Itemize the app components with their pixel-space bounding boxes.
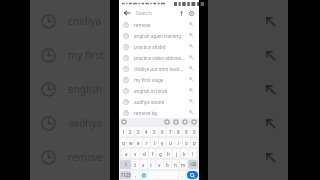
- staticText: my first stage: [134, 77, 185, 83]
- button[interactable]: Back: [122, 8, 132, 18]
- button[interactable]: h: [165, 149, 172, 158]
- button[interactable]: 1: [120, 127, 126, 136]
- button[interactable]: .: [179, 171, 186, 179]
- button[interactable]: e: [135, 138, 142, 147]
- staticText: 3: [137, 129, 140, 135]
- button[interactable]: 🌐: [140, 171, 147, 179]
- button[interactable]: t: [151, 138, 158, 147]
- staticText: 4: [145, 129, 148, 135]
- button[interactable]: s: [131, 149, 139, 158]
- button[interactable]: Insert query: [188, 76, 195, 83]
- staticText: ⌫: [190, 162, 197, 167]
- staticText: m: [181, 162, 186, 168]
- button[interactable]: Emoji: [182, 119, 188, 125]
- staticText: s: [134, 151, 137, 157]
- staticText: chidiya aur anni background: [134, 66, 185, 72]
- button[interactable]: j: [173, 149, 180, 158]
- button[interactable]: 5: [151, 127, 158, 136]
- button[interactable]: practice shabd: [119, 41, 199, 52]
- button[interactable]: a: [122, 149, 130, 158]
- staticText: j: [176, 151, 178, 157]
- button[interactable]: Insert query: [188, 87, 195, 94]
- staticText: 🌐: [141, 173, 147, 178]
- button[interactable]: 0: [191, 127, 198, 136]
- button[interactable]: Insert query: [188, 32, 195, 39]
- staticText: my first: [68, 48, 104, 62]
- button[interactable]: w: [127, 138, 134, 147]
- button[interactable]: r: [143, 138, 150, 147]
- staticText: remove bg: [134, 110, 185, 116]
- button[interactable]: Search: [136, 10, 176, 17]
- button[interactable]: f: [149, 149, 156, 158]
- staticText: ?123: [121, 172, 131, 178]
- button[interactable]: english in hindi: [119, 85, 199, 96]
- button[interactable]: l: [189, 149, 196, 158]
- button[interactable]: z: [132, 160, 139, 169]
- button[interactable]: m: [180, 160, 187, 169]
- button[interactable]: o: [183, 138, 190, 147]
- button[interactable]: GIF: [164, 119, 170, 125]
- button[interactable]: chidiya aur anni background: [119, 63, 199, 74]
- button[interactable]: 3: [135, 127, 142, 136]
- button[interactable]: Lens search: [186, 8, 196, 18]
- button[interactable]: 9: [183, 127, 190, 136]
- button[interactable]: g: [157, 149, 164, 158]
- staticText: x: [142, 162, 145, 168]
- button[interactable]: k: [181, 149, 188, 158]
- button[interactable]: Sticker: [173, 119, 179, 125]
- staticText: english: [68, 82, 103, 96]
- button[interactable]: n: [172, 160, 179, 169]
- button[interactable]: x: [140, 160, 147, 169]
- staticText: english again training: [134, 33, 185, 39]
- button[interactable]: c: [148, 160, 155, 169]
- staticText: q: [122, 140, 125, 146]
- button[interactable]: Settings: [191, 119, 197, 125]
- button[interactable]: remove: [119, 19, 199, 30]
- staticText: d: [143, 151, 146, 157]
- staticText: p: [193, 140, 196, 146]
- button[interactable]: remove bg: [119, 107, 199, 118]
- staticText: remove: [134, 22, 185, 28]
- staticText: y: [161, 140, 164, 146]
- button[interactable]: Clipboard: [121, 119, 127, 125]
- button[interactable]: ⌫: [188, 160, 198, 169]
- button[interactable]: 6: [159, 127, 166, 136]
- staticText: 0: [193, 129, 196, 135]
- staticText: e: [137, 140, 140, 146]
- button[interactable]: b: [164, 160, 171, 169]
- button[interactable]: ?123: [120, 171, 131, 179]
- button[interactable]: my first stage: [119, 74, 199, 85]
- button[interactable]: ,: [132, 171, 139, 179]
- button[interactable]: p: [191, 138, 198, 147]
- button[interactable]: ⇧: [120, 160, 131, 169]
- button[interactable]: Insert query: [188, 21, 195, 28]
- button[interactable]: 7: [167, 127, 174, 136]
- staticText: g: [159, 151, 162, 157]
- button[interactable]: y: [159, 138, 166, 147]
- button[interactable]: aadhya sound: [119, 96, 199, 107]
- button[interactable]: 2: [127, 127, 134, 136]
- staticText: 7: [169, 129, 172, 135]
- button[interactable]: 4: [143, 127, 150, 136]
- button[interactable]: q: [120, 138, 126, 147]
- button[interactable]: u: [167, 138, 174, 147]
- button[interactable]: d: [140, 149, 148, 158]
- button[interactable]: Insert query: [188, 43, 195, 50]
- staticText: ⇧: [124, 162, 128, 167]
- button[interactable]: Insert query: [188, 65, 195, 72]
- button[interactable]: Insert query: [188, 54, 195, 61]
- button[interactable]: Search: [187, 171, 198, 179]
- button[interactable]: practice video abbreviation: [119, 52, 199, 63]
- staticText: 2: [129, 129, 132, 135]
- staticText: a: [125, 151, 128, 157]
- button[interactable]: v: [156, 160, 163, 169]
- staticText: 6: [161, 129, 164, 135]
- button[interactable]: Insert query: [188, 98, 195, 105]
- button[interactable]: 8: [175, 127, 182, 136]
- button[interactable]: Voice search: [176, 8, 186, 18]
- button[interactable]: Insert query: [188, 109, 195, 116]
- button[interactable]: i: [175, 138, 182, 147]
- staticText: l: [192, 151, 194, 157]
- button[interactable]: english again training: [119, 30, 199, 41]
